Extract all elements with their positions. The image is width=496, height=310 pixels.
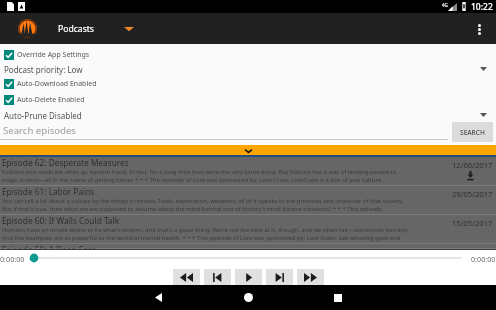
staticText: 10:22 [471,1,493,13]
staticText: Podcasts [58,23,94,35]
button[interactable]: Episode 59: A Deep Fear [0,244,496,249]
button[interactable]: Previous chapter [204,269,231,285]
button[interactable]: Episode 60: If Walls Could Talk [0,215,496,244]
button[interactable]: Auto-Prune Disabled [0,108,496,122]
button[interactable]: Select feed [124,26,134,32]
button[interactable]: Override App Settings [0,48,496,62]
button[interactable]: Collapse header [245,149,252,153]
button[interactable]: Home [234,285,262,310]
staticText: 15/05/2017 [452,218,493,228]
staticText: Auto-Download Enabled [17,79,97,89]
button[interactable]: Podcast priority: Low [0,62,496,76]
button[interactable]: Search episodes [0,121,496,140]
button[interactable]: Recent apps [324,285,352,310]
button[interactable]: Episode 61: Labor Pains [0,186,496,215]
staticText: Override App Settings [17,50,90,60]
staticText: Humans have an innate desire to fix what… [2,226,412,242]
button[interactable]: Back [144,285,172,310]
button[interactable]: Auto-Download Enabled [0,77,496,91]
staticText: Folklore and medicine often go hand in h… [2,168,412,184]
staticText: Auto-Prune Disabled [4,110,82,121]
button[interactable]: Download episode [466,171,475,180]
staticText: 01/05/2017 [452,247,493,249]
staticText: 29/05/2017 [452,189,493,199]
staticText: 0:00:00 [0,254,25,264]
button[interactable]: More options [469,19,489,39]
staticText: 0:00:00 [471,254,496,264]
button[interactable]: Auto-Delete Enabled [0,93,496,107]
button[interactable]: Episode 62: Desperate Measures [0,157,496,186]
staticText: Episode 61: Labor Pains [2,186,95,197]
staticText: Episode 62: Desperate Measures [2,157,129,168]
button[interactable]: Seek bar [28,253,468,263]
button[interactable]: SEARCH [452,122,493,142]
button[interactable]: Rewind [173,269,200,285]
staticText: Auto-Delete Enabled [17,95,85,105]
staticText: Episode 59: A Deep Fear [2,244,96,249]
staticText: 12/06/2017 [452,160,493,170]
button[interactable]: Open drawer [18,19,37,38]
button[interactable]: Play [235,269,262,285]
staticText: 4G [442,2,448,8]
staticText: SEARCH [460,128,485,137]
button[interactable]: Fast forward [297,269,324,285]
staticText: You can tell a lot about a culture by th… [2,197,412,213]
staticText: Episode 60: If Walls Could Talk [2,215,120,226]
staticText: Search episodes [3,124,76,137]
button[interactable]: Next chapter [266,269,293,285]
staticText: Podcast priority: Low [4,64,83,75]
